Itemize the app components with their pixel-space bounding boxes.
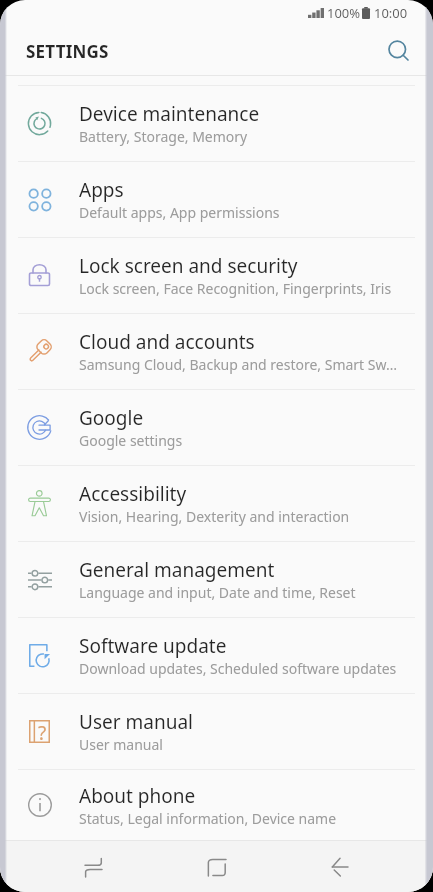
staticText: 10:00 (374, 4, 408, 22)
staticText: General management (79, 557, 275, 583)
button[interactable]: Device maintenance (0, 86, 433, 161)
staticText: ? (38, 720, 47, 742)
staticText: Apps (79, 177, 124, 203)
staticText: Accessibility (79, 481, 187, 507)
staticText: About phone (79, 783, 196, 809)
staticText: Status, Legal information, Device name (79, 809, 337, 828)
staticText: Cloud and accounts (79, 329, 255, 355)
staticText: Google settings (79, 431, 183, 450)
button[interactable]: ? (0, 694, 433, 769)
button[interactable]: Home (186, 842, 248, 892)
button[interactable]: Accessibility (0, 466, 433, 541)
staticText: SETTINGS (26, 40, 109, 63)
staticText: Google (79, 405, 144, 431)
button[interactable]: Google (0, 390, 433, 465)
button[interactable]: Cloud and accounts (0, 314, 433, 389)
button[interactable]: Apps (0, 162, 433, 237)
staticText: Software update (79, 633, 227, 659)
button[interactable]: Software update (0, 618, 433, 693)
button[interactable]: Lock screen and security (0, 238, 433, 313)
staticText: Samsung Cloud, Backup and restore, Smart… (79, 355, 398, 374)
staticText: Default apps, App permissions (79, 203, 280, 222)
staticText: Lock screen, Face Recognition, Fingerpri… (79, 279, 392, 298)
staticText: Lock screen and security (79, 253, 298, 279)
button[interactable]: About phone (0, 770, 433, 840)
staticText: User manual (79, 709, 193, 735)
button[interactable]: General management (0, 542, 433, 617)
staticText: Vision, Hearing, Dexterity and interacti… (79, 507, 350, 526)
staticText: Language and input, Date and time, Reset (79, 583, 356, 602)
staticText: Download updates, Scheduled software upd… (79, 659, 397, 678)
staticText: Battery, Storage, Memory (79, 127, 248, 146)
staticText: Device maintenance (79, 101, 260, 127)
button[interactable]: Back (309, 842, 371, 892)
staticText: 100% (327, 4, 361, 22)
button[interactable]: Search (377, 30, 419, 71)
button[interactable]: Recent apps (62, 842, 124, 892)
staticText: User manual (79, 735, 163, 754)
